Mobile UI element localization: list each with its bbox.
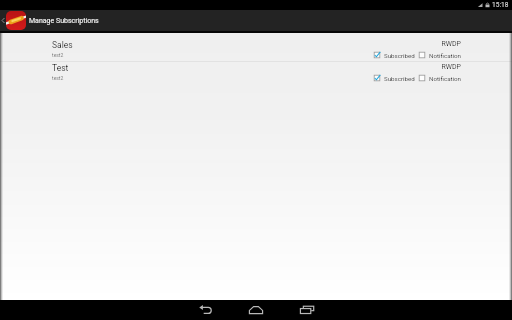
staticText: 15:18 — [492, 1, 509, 9]
staticText: test2 — [52, 52, 64, 58]
staticText: RWDP — [441, 63, 461, 71]
staticText: Subscribed — [384, 52, 415, 59]
staticText: Notification — [429, 52, 461, 59]
staticText: Notification — [429, 75, 461, 82]
other: Navigate up — [1, 16, 5, 25]
button[interactable]: Recent apps — [297, 304, 316, 315]
button[interactable]: Home — [246, 304, 265, 315]
staticText: Test — [52, 63, 69, 73]
button[interactable]: Subscribed — [373, 74, 415, 82]
button[interactable]: Sales — [0, 39, 512, 61]
button[interactable]: Subscribed — [373, 51, 415, 59]
staticText: RWDP — [441, 40, 461, 48]
staticText: test2 — [52, 75, 64, 81]
button[interactable]: Navigate up — [0, 10, 512, 31]
button[interactable]: Notification — [418, 51, 461, 59]
button[interactable]: Back — [196, 304, 215, 315]
button[interactable]: Notification — [418, 74, 461, 82]
staticText: Manage Subscriptions — [29, 17, 99, 25]
staticText: Subscribed — [384, 75, 415, 82]
staticText: Sales — [52, 40, 73, 50]
button[interactable]: Test — [0, 62, 512, 84]
